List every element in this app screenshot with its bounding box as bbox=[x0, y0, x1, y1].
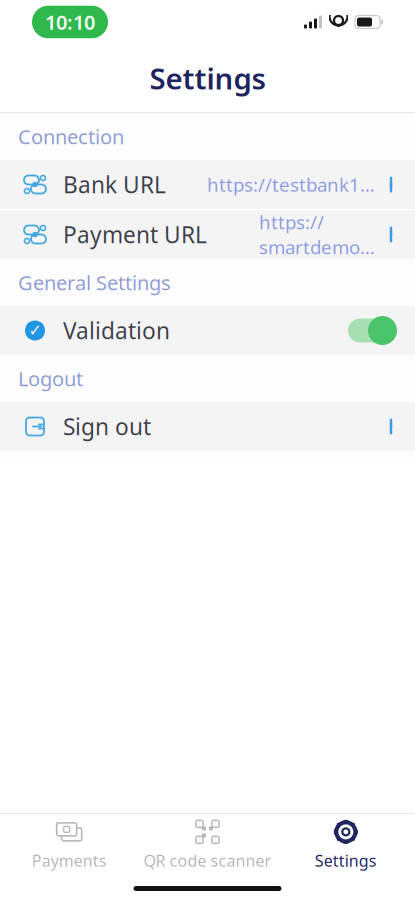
button[interactable]: Payment URL bbox=[0, 210, 415, 259]
button[interactable]: QR code scanner bbox=[138, 809, 277, 879]
staticText: ✓ bbox=[28, 321, 41, 340]
button[interactable]: Payments bbox=[0, 809, 138, 879]
button[interactable]: Settings bbox=[277, 809, 415, 879]
staticText: Connection bbox=[18, 123, 124, 150]
staticText: Logout bbox=[18, 365, 83, 392]
staticText: https://smartdemo… bbox=[259, 210, 375, 259]
staticText: Validation bbox=[63, 315, 170, 345]
staticText: Settings bbox=[149, 58, 265, 97]
staticText: Bank URL bbox=[63, 169, 166, 199]
button[interactable]: ✓ bbox=[0, 306, 415, 355]
staticText: 10:10 bbox=[45, 9, 95, 35]
button[interactable]: Bank URL bbox=[0, 160, 415, 209]
staticText: General Settings bbox=[18, 269, 171, 296]
staticText: Sign out bbox=[63, 411, 151, 441]
staticText: Settings bbox=[315, 850, 377, 871]
staticText: Payments bbox=[32, 850, 107, 871]
button[interactable]: Sign out bbox=[0, 402, 415, 451]
staticText: QR code scanner bbox=[143, 850, 271, 871]
staticText: Payment URL bbox=[63, 219, 207, 249]
staticText: https://testbank1… bbox=[207, 172, 375, 197]
